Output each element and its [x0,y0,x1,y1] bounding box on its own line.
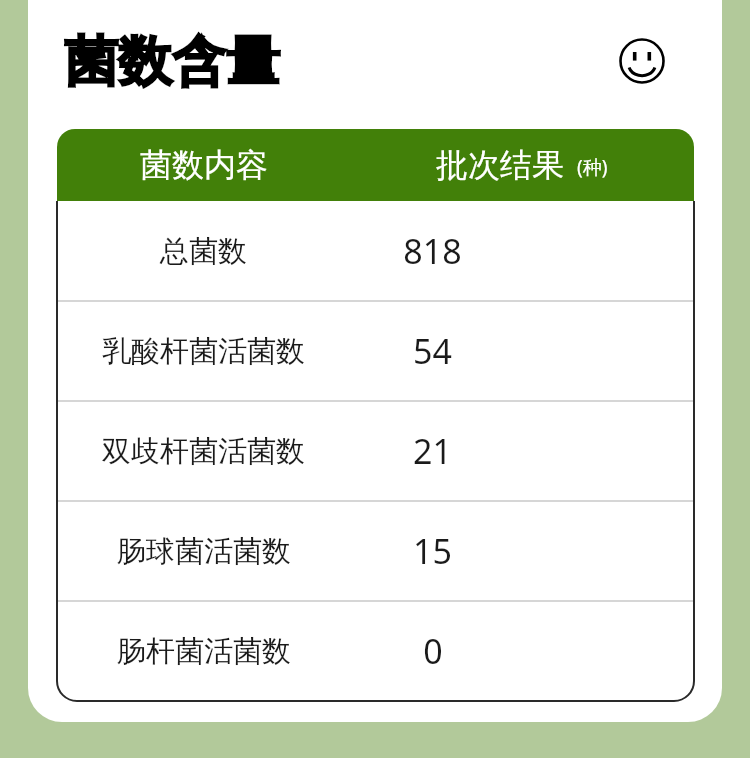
staticText: 54 [413,328,452,374]
button[interactable]: 肠杆菌活菌数 [57,601,694,701]
staticText: 肠球菌活菌数 [117,533,291,570]
staticText: 批次结果 [436,145,564,185]
staticText: 乳酸杆菌活菌数 [102,333,305,370]
button[interactable]: 乳酸杆菌活菌数 [57,301,694,401]
staticText: 双歧杆菌活菌数 [102,433,305,470]
staticText: 21 [413,428,452,474]
button[interactable]: Smiley [617,36,667,86]
staticText: 总菌数 [160,233,247,270]
staticText: 818 [403,228,462,274]
staticText: 菌数含量 [64,28,280,96]
button[interactable]: 肠球菌活菌数 [57,501,694,601]
staticText: 肠杆菌活菌数 [117,633,291,670]
staticText: 0 [423,628,443,674]
button[interactable]: 双歧杆菌活菌数 [57,401,694,501]
staticText: (种) [577,154,608,180]
button[interactable]: 总菌数 [57,201,694,301]
staticText: 15 [413,528,452,574]
staticText: 菌数内容 [140,145,268,185]
